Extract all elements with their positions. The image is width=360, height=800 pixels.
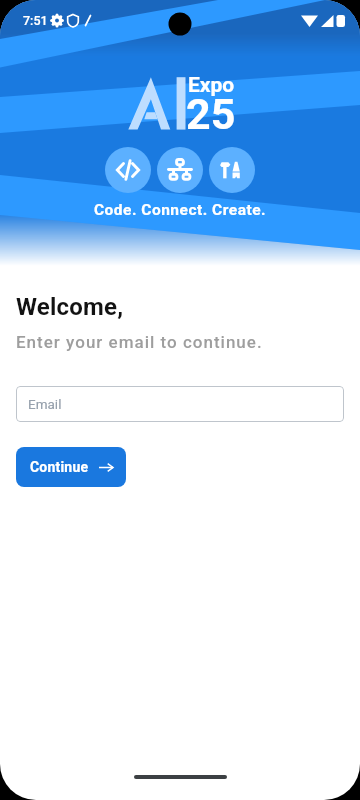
staticText: Expo <box>188 73 235 98</box>
button[interactable]: Network <box>157 147 203 193</box>
button[interactable]: Continue <box>16 447 126 487</box>
button[interactable]: Email <box>16 386 344 422</box>
button[interactable]: Tools <box>209 147 255 193</box>
staticText: Enter your email to continue. <box>16 332 263 352</box>
button[interactable]: Code <box>105 147 151 193</box>
staticText: Email <box>28 396 62 412</box>
staticText: Continue <box>30 459 89 475</box>
staticText: 7:51 <box>23 13 48 28</box>
staticText: Code. Connect. Create. <box>0 201 360 219</box>
staticText: 25 <box>186 89 236 139</box>
staticText: Welcome, <box>16 293 124 321</box>
